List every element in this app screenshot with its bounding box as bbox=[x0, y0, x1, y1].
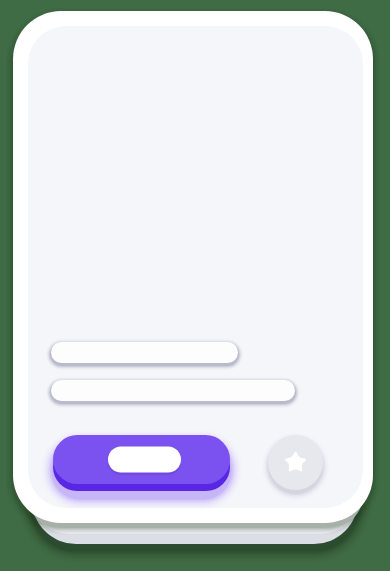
button[interactable]: Favourite bbox=[268, 435, 323, 490]
button[interactable] bbox=[53, 435, 230, 491]
